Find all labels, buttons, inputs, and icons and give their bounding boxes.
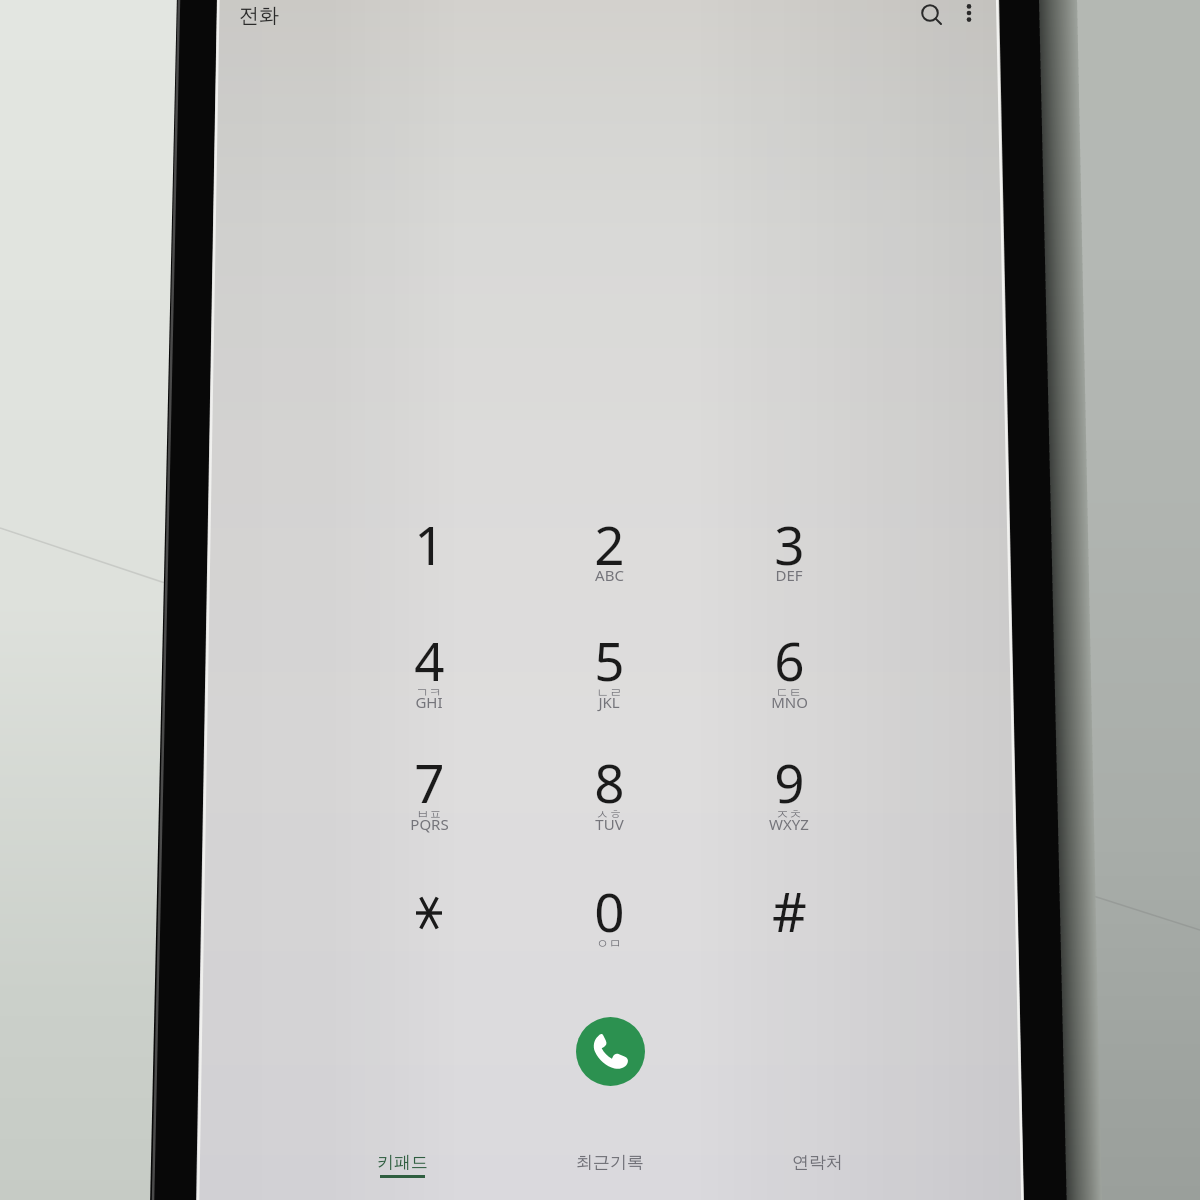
button[interactable] [357,730,501,842]
staticText: 연락처 [792,1152,843,1173]
button[interactable] [717,492,861,604]
staticText: 키패드 [377,1152,428,1173]
button[interactable]: More options [952,0,986,34]
staticText: ㄴㄹ [596,684,622,700]
button[interactable]: 키패드 [330,1138,474,1194]
staticText: MNO [771,692,808,712]
button[interactable] [537,730,681,842]
button[interactable] [717,859,861,971]
staticText: 최근기록 [576,1152,644,1173]
button[interactable]: 연락처 [745,1138,889,1194]
staticText: 4 [414,624,445,696]
staticText: # [772,874,807,948]
button[interactable] [717,608,861,720]
button[interactable] [537,608,681,720]
button[interactable]: Search [913,0,947,34]
staticText: ABC [595,565,624,585]
button[interactable] [357,492,501,604]
staticText: ㅅㅎ [596,806,622,822]
staticText: 전화 [239,3,279,28]
staticText: 0 [594,875,625,947]
staticText: 5 [594,624,625,696]
button[interactable] [357,608,501,720]
staticText: DEF [775,565,803,585]
button[interactable] [537,859,681,971]
button[interactable] [537,492,681,604]
staticText: 8 [594,746,625,818]
staticText: ㅇㅁ [596,935,622,951]
button[interactable]: 전화 [239,3,279,28]
button[interactable] [357,859,501,971]
button[interactable]: Call [576,1017,645,1086]
staticText: TUV [595,814,624,834]
button[interactable]: 최근기록 [538,1138,682,1194]
staticText: 6 [774,624,805,696]
staticText: 1 [414,508,445,580]
staticText: 9 [774,746,805,818]
staticText: ㅈㅊ [776,806,802,822]
staticText: 7 [414,746,445,818]
staticText: GHI [415,692,443,712]
staticText: ㄷㅌ [776,684,802,700]
staticText: ㅂㅍ [416,806,442,822]
staticText: 3 [774,508,805,580]
staticText: JKL [598,692,620,712]
staticText: WXYZ [769,814,809,834]
staticText: ㄱㅋ [416,684,442,700]
staticText: PQRS [410,814,449,834]
button[interactable] [717,730,861,842]
staticText: 2 [594,508,625,580]
